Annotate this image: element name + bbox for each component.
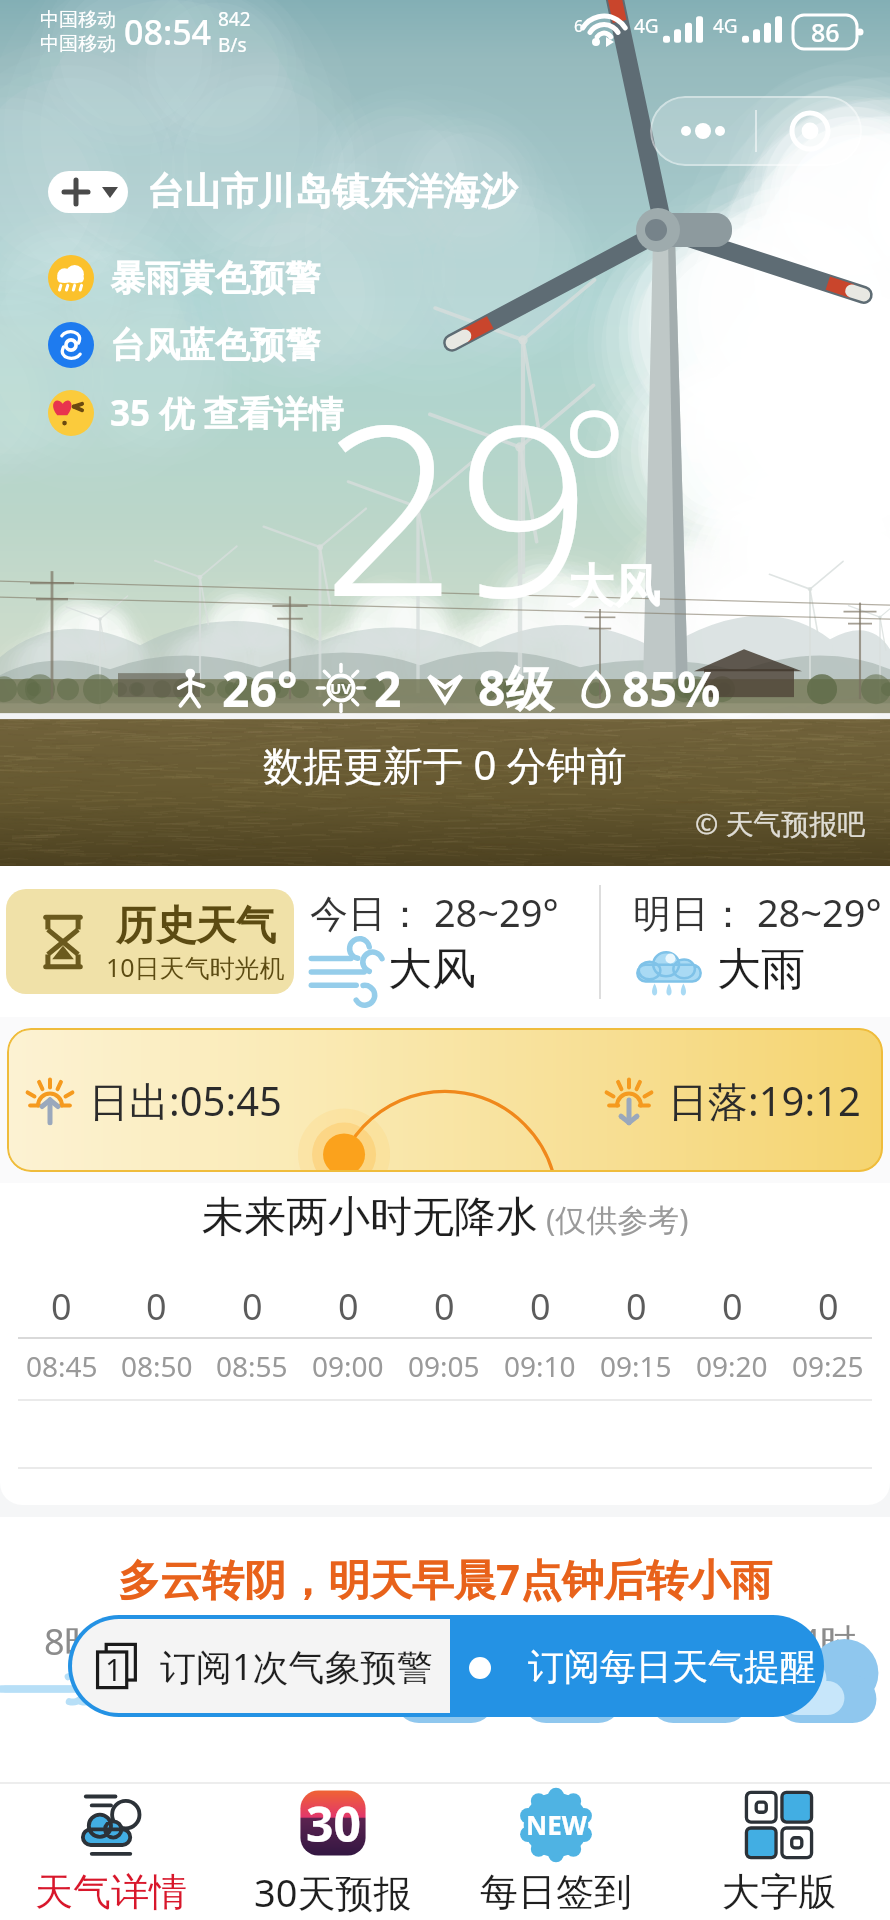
staticText: 30天预报 — [254, 1866, 412, 1918]
button[interactable]: 今日： 28~29° — [310, 866, 599, 1017]
staticText: 0 — [434, 1282, 455, 1331]
staticText: 历史天气 — [116, 900, 276, 950]
staticText: 订阅1次气象预警 — [160, 1642, 433, 1691]
staticText: 大雨 — [717, 942, 805, 997]
staticText: 09:15 — [600, 1347, 672, 1385]
staticText: UV — [330, 678, 352, 698]
staticText: 大字版 — [722, 1868, 836, 1916]
staticText: 每日签到 — [480, 1868, 632, 1916]
staticText: 35 优 查看详情 — [110, 389, 344, 437]
staticText: 09:25 — [792, 1347, 864, 1385]
button[interactable]: Close — [757, 96, 862, 166]
staticText: 12时 — [531, 1617, 609, 1666]
button[interactable]: 台风蓝色预警 — [48, 322, 320, 368]
staticText: 08:54 — [124, 9, 212, 55]
button[interactable]: NEW — [444, 1784, 667, 1920]
staticText: 0 — [626, 1282, 647, 1331]
staticText: 85% — [622, 656, 721, 721]
staticText: 大风 — [568, 558, 660, 616]
button[interactable]: 大字版 — [667, 1784, 890, 1920]
staticText: 今日： 28~29° — [310, 886, 559, 938]
staticText: 08:45 — [26, 1347, 98, 1385]
staticText: 08:55 — [216, 1347, 288, 1385]
staticText: © 天气预报吧 — [695, 804, 866, 842]
button[interactable]: More — [650, 96, 755, 166]
button[interactable]: 历史天气 — [6, 889, 294, 994]
staticText: 09:20 — [696, 1347, 768, 1385]
staticText: 6 — [574, 15, 584, 37]
staticText: 2 — [374, 656, 402, 721]
staticText: 1 — [105, 1649, 123, 1690]
staticText: 未来两小时无降水 — [202, 1191, 538, 1244]
button[interactable]: 订阅每日天气提醒 — [454, 1615, 824, 1717]
staticText: 08:50 — [121, 1347, 193, 1385]
staticText: 8级 — [478, 655, 554, 721]
staticText: 天气详情 — [35, 1868, 187, 1916]
staticText: 中国移动 — [40, 32, 116, 56]
staticText: 日落:19:12 — [668, 1073, 861, 1128]
button[interactable]: 天气详情 — [0, 1784, 222, 1920]
staticText: 日出:05:45 — [89, 1073, 282, 1128]
staticText: 4G — [634, 13, 659, 39]
button[interactable]: 35 优 查看详情 — [48, 389, 344, 437]
staticText: 10日天气时光机 — [106, 950, 285, 984]
staticText: 8时 — [44, 1617, 101, 1666]
staticText: 11时 — [407, 1617, 485, 1666]
staticText: 暴雨黄色预警 — [110, 256, 320, 300]
staticText: ° — [560, 356, 629, 574]
staticText: 29 — [322, 344, 592, 665]
staticText: 0 — [818, 1282, 839, 1331]
staticText: 26° — [222, 656, 298, 721]
staticText: 0 — [146, 1282, 167, 1331]
staticText: 中国移动 — [40, 8, 116, 32]
staticText: (仅供参考) — [546, 1198, 689, 1240]
staticText: 明日： 28~29° — [633, 886, 882, 938]
staticText: 多云转阴，明天早晨7点钟后转小雨 — [118, 1550, 773, 1607]
staticText: 0 — [722, 1282, 743, 1331]
staticText: 09:05 — [408, 1347, 480, 1385]
staticText: 09:00 — [312, 1347, 384, 1385]
button[interactable]: 30 — [222, 1784, 444, 1920]
staticText: 订阅每日天气提醒 — [528, 1644, 816, 1689]
staticText: 0 — [530, 1282, 551, 1331]
staticText: 86 — [811, 15, 840, 49]
staticText: 13时 — [655, 1617, 733, 1666]
staticText: NEW — [526, 1807, 587, 1842]
button[interactable]: 日出:05:45 — [7, 1028, 883, 1172]
staticText: 9时 — [169, 1617, 226, 1666]
staticText: 842 — [218, 6, 251, 32]
staticText: 09:10 — [504, 1347, 576, 1385]
staticText: 大风 — [388, 942, 476, 997]
button[interactable]: 明日： 28~29° — [633, 866, 890, 1017]
staticText: 14时 — [779, 1617, 857, 1666]
staticText: 台风蓝色预警 — [110, 323, 320, 367]
button[interactable]: Add city — [48, 171, 128, 213]
staticText: B/s — [218, 32, 247, 58]
button[interactable]: 暴雨黄色预警 — [48, 255, 320, 301]
staticText: 0 — [51, 1282, 72, 1331]
staticText: 台山市川岛镇东洋海沙 — [147, 168, 517, 215]
staticText: 30 — [306, 1791, 361, 1856]
staticText: 10时 — [283, 1617, 361, 1666]
staticText: 4G — [713, 13, 738, 39]
staticText: 0 — [338, 1282, 359, 1331]
button[interactable]: 1 — [72, 1619, 450, 1713]
staticText: 数据更新于 0 分钟前 — [263, 737, 627, 792]
staticText: 0 — [242, 1282, 263, 1331]
